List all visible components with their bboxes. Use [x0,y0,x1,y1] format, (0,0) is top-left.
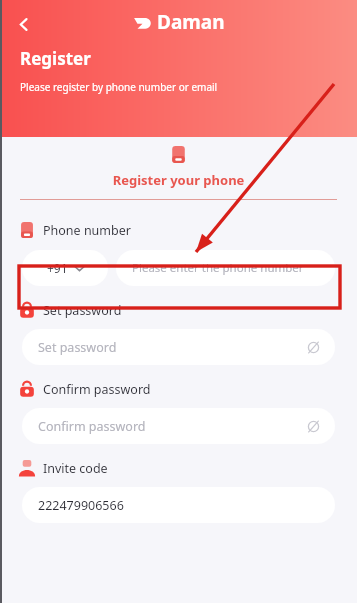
staticText: Register your phone [0,171,357,189]
staticText: +91 [47,260,68,276]
staticText: Set password [38,339,117,356]
staticText: Phone number [43,222,131,239]
button[interactable]: Set password [22,329,335,365]
staticText: Set password [43,302,122,319]
button[interactable]: 222479906566 [22,487,335,523]
staticText: Register [20,47,91,70]
staticText: Confirm password [38,418,146,435]
staticText: Confirm password [43,381,151,398]
button[interactable]: Please enter the phone number [116,250,335,286]
staticText: Please enter the phone number [132,260,304,276]
staticText: Invite code [43,460,108,477]
button[interactable]: Show password [303,337,323,357]
staticText: Please register by phone number or email [20,80,218,94]
staticText: Daman [157,9,225,35]
staticText: 222479906566 [38,497,124,514]
button[interactable]: +91 [22,250,108,286]
button[interactable]: Confirm password [22,408,335,444]
button[interactable]: Show password [303,416,323,436]
button[interactable]: Back [6,7,40,41]
